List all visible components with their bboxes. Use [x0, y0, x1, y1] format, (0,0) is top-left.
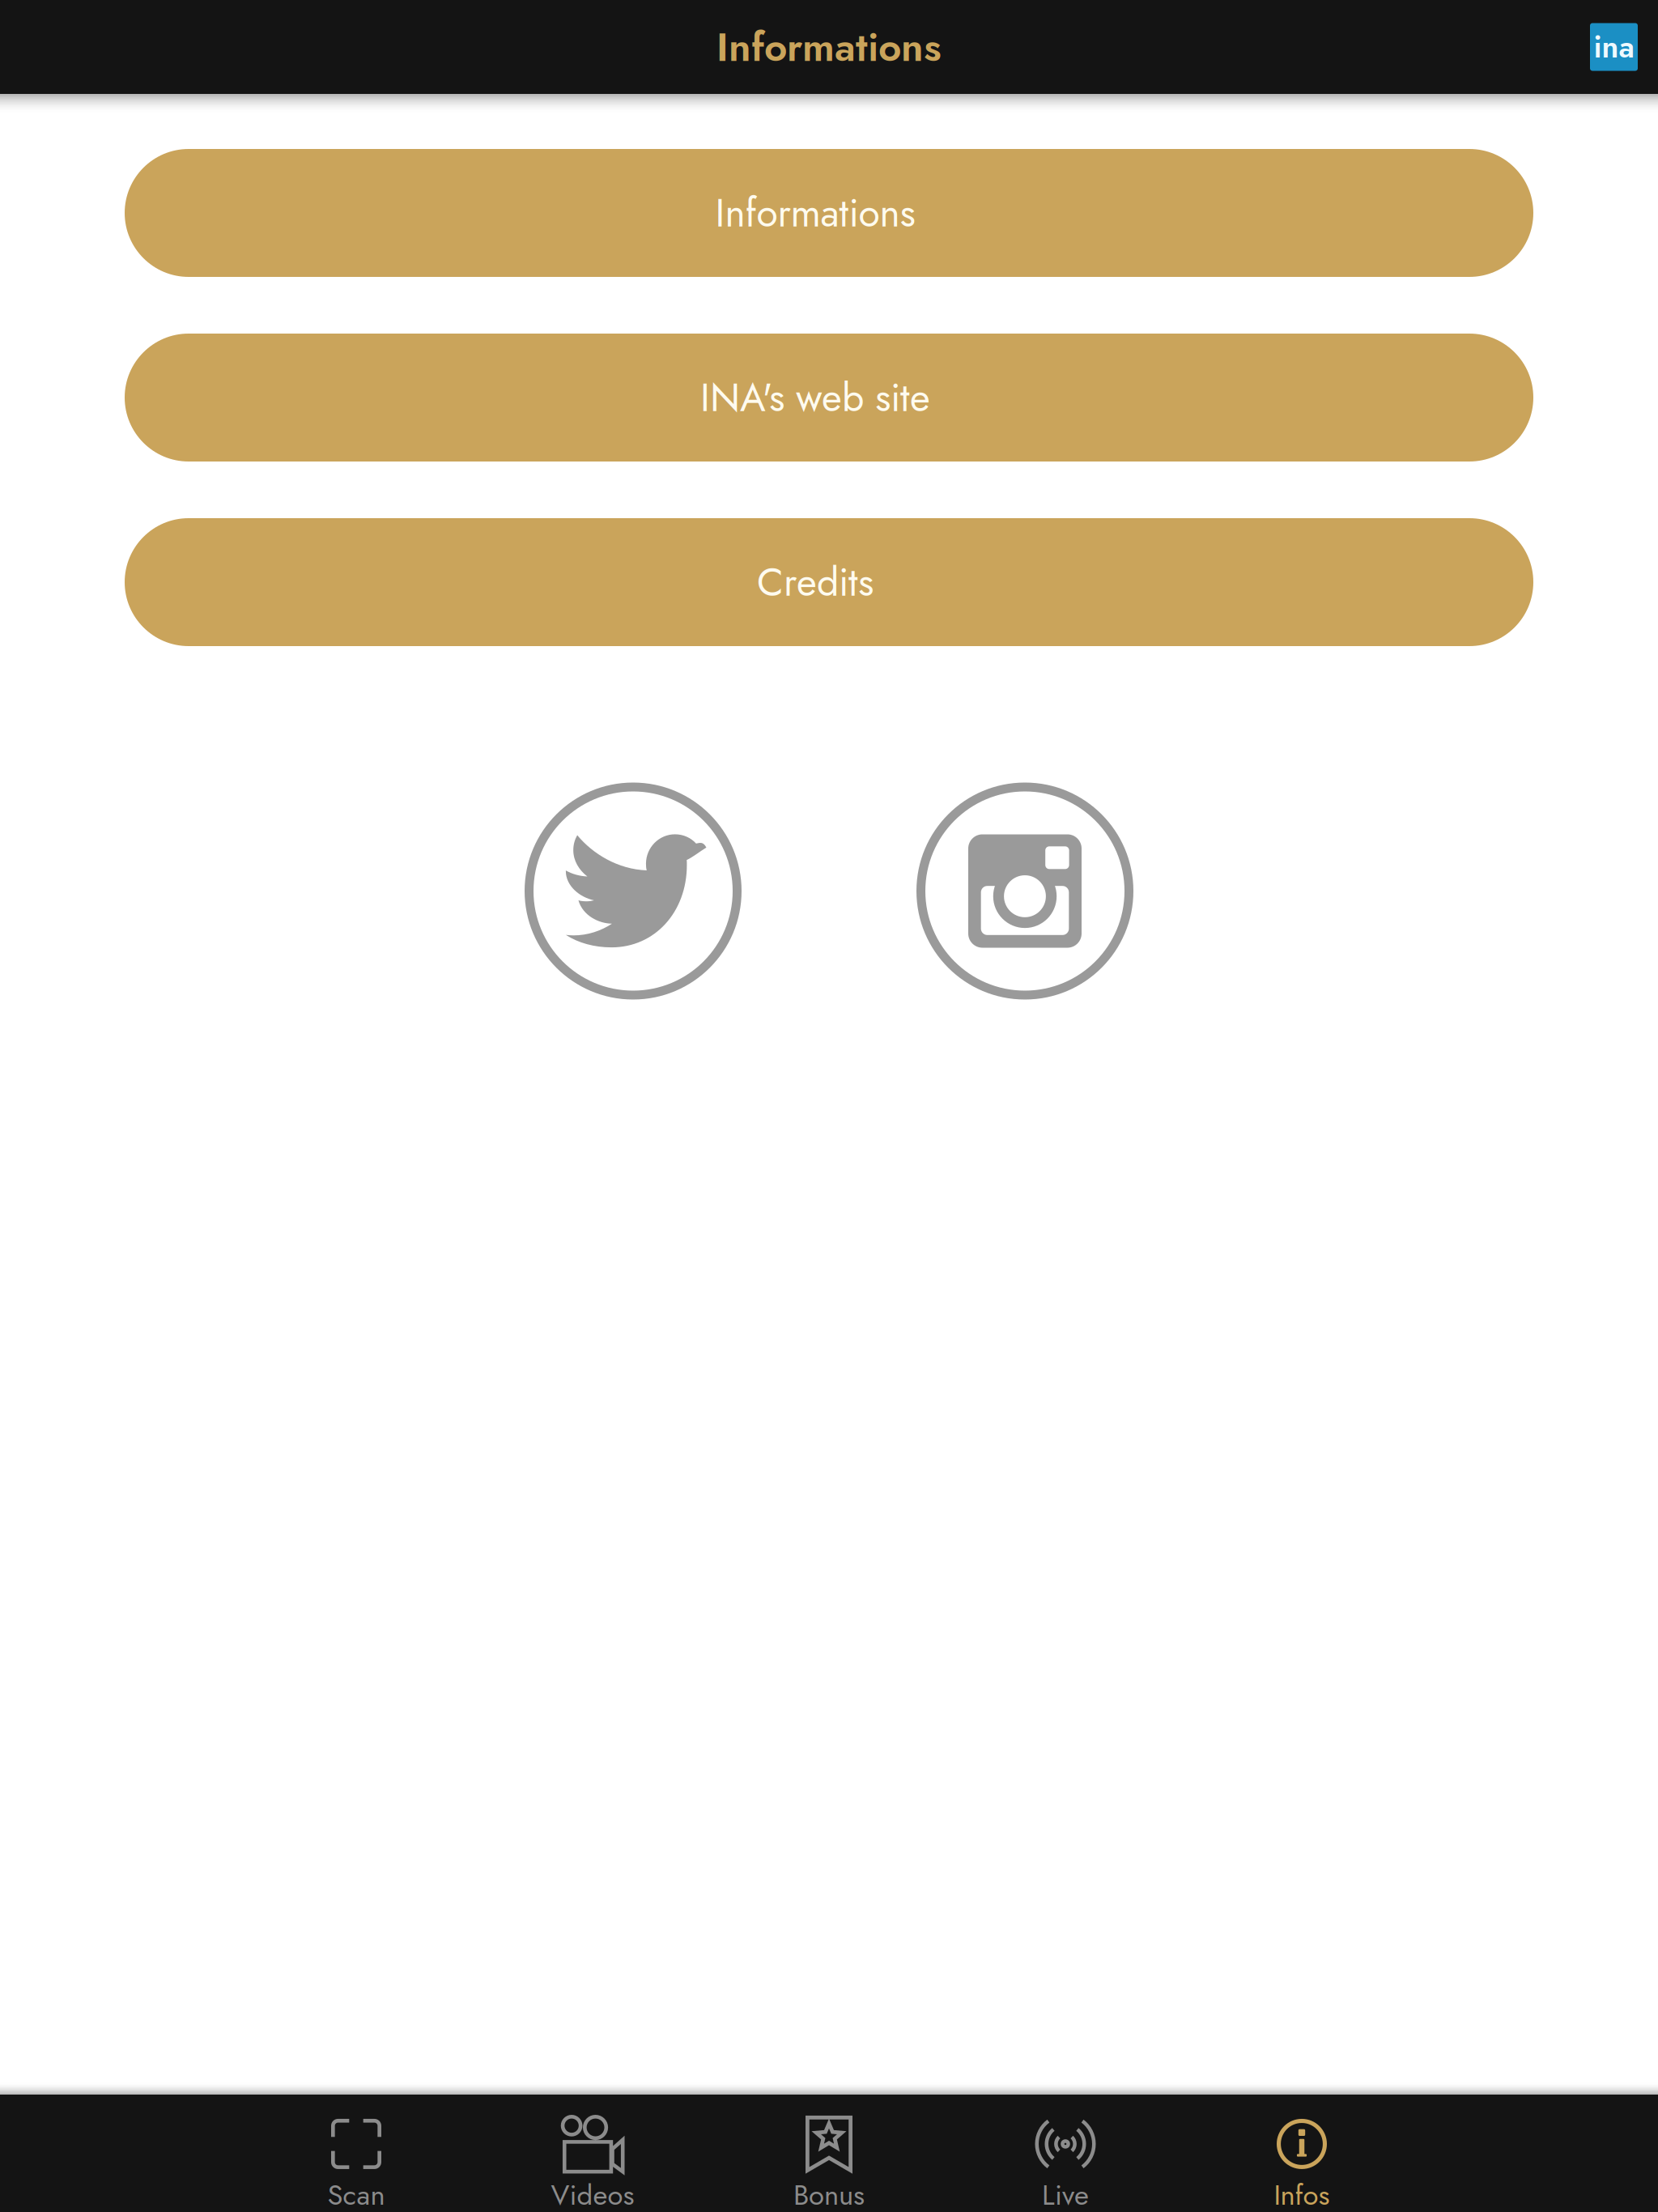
button[interactable]: Credits	[125, 518, 1533, 646]
staticText: Informations	[715, 185, 915, 241]
staticText: Bonus	[793, 2175, 865, 2212]
button[interactable]: Infos	[1184, 2095, 1420, 2212]
staticText: Informations	[716, 18, 942, 76]
button[interactable]: Twitter	[529, 787, 737, 995]
button[interactable]: Videos	[474, 2095, 711, 2212]
staticText: Videos	[551, 2175, 634, 2212]
button[interactable]: Instagram	[921, 787, 1129, 995]
staticText: Scan	[327, 2175, 385, 2212]
staticText: Live	[1042, 2175, 1089, 2212]
button[interactable]: Live	[947, 2095, 1184, 2212]
button[interactable]: INA	[1590, 23, 1638, 71]
button[interactable]: Scan	[238, 2095, 474, 2212]
staticText: INA's web site	[700, 369, 930, 426]
button[interactable]: INA's web site	[125, 334, 1533, 462]
staticText: Infos	[1274, 2175, 1330, 2212]
staticText: Credits	[757, 554, 874, 610]
button[interactable]: Informations	[125, 149, 1533, 277]
staticText: ina	[1594, 25, 1634, 69]
button[interactable]: Bonus	[711, 2095, 947, 2212]
